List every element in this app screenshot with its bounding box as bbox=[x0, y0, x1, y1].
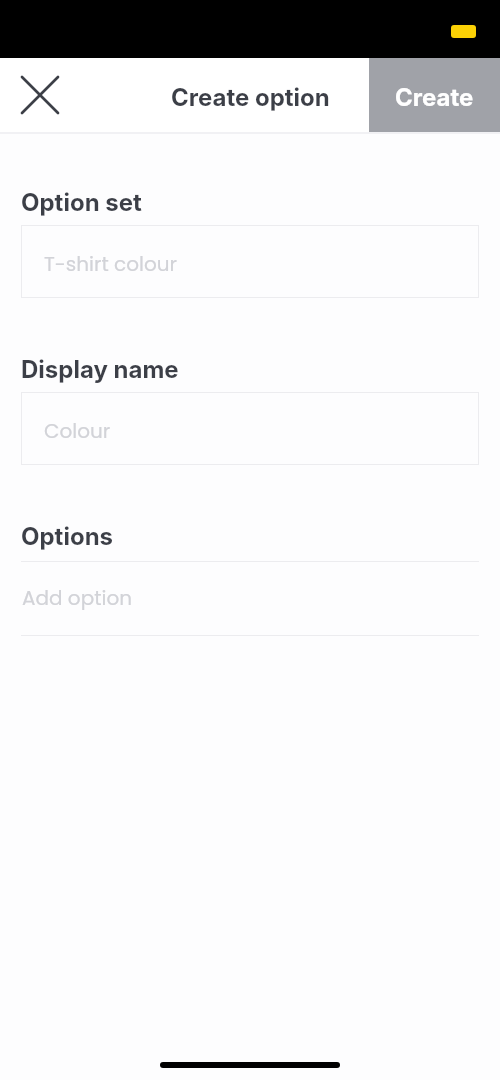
staticText: Colour bbox=[44, 417, 111, 445]
button[interactable]: Close bbox=[10, 65, 70, 125]
staticText: Display name bbox=[21, 355, 179, 384]
button[interactable]: T-shirt colour bbox=[21, 225, 479, 298]
button[interactable]: Colour bbox=[21, 392, 479, 465]
staticText: Add option bbox=[22, 584, 132, 612]
staticText: Create option bbox=[171, 83, 330, 112]
staticText: Option set bbox=[21, 188, 142, 217]
staticText: T-shirt colour bbox=[44, 250, 177, 278]
staticText: Create bbox=[395, 83, 474, 112]
button[interactable]: Create bbox=[369, 58, 500, 132]
button[interactable]: Add option bbox=[21, 562, 479, 635]
staticText: Options bbox=[21, 522, 114, 551]
